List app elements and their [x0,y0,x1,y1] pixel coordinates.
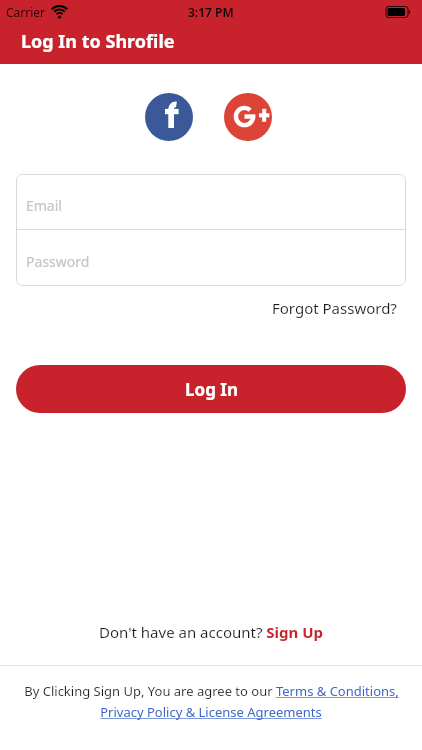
staticText: Don't have an account? Sign Up [99,622,324,642]
button[interactable]: Forgot Password? [272,298,397,318]
button[interactable] [224,93,272,141]
button[interactable] [145,93,193,141]
staticText: Password [26,252,90,271]
staticText: Log In [185,378,238,401]
staticText: Email [26,196,62,215]
staticText: Carrier [6,4,46,20]
button[interactable]: Don't have an account? Sign Up [0,622,422,642]
staticText: By Clicking Sign Up, You are agree to ou… [24,682,399,700]
button[interactable]: Password [16,230,406,285]
button[interactable]: By Clicking Sign Up, You are agree to ou… [0,682,422,721]
button[interactable]: Log In [16,365,406,413]
button[interactable]: Email [16,174,406,229]
staticText: 3:17 PM [188,4,234,20]
staticText: Privacy Policy & License Agreements [100,703,322,721]
staticText: Log In to Shrofile [21,29,175,54]
